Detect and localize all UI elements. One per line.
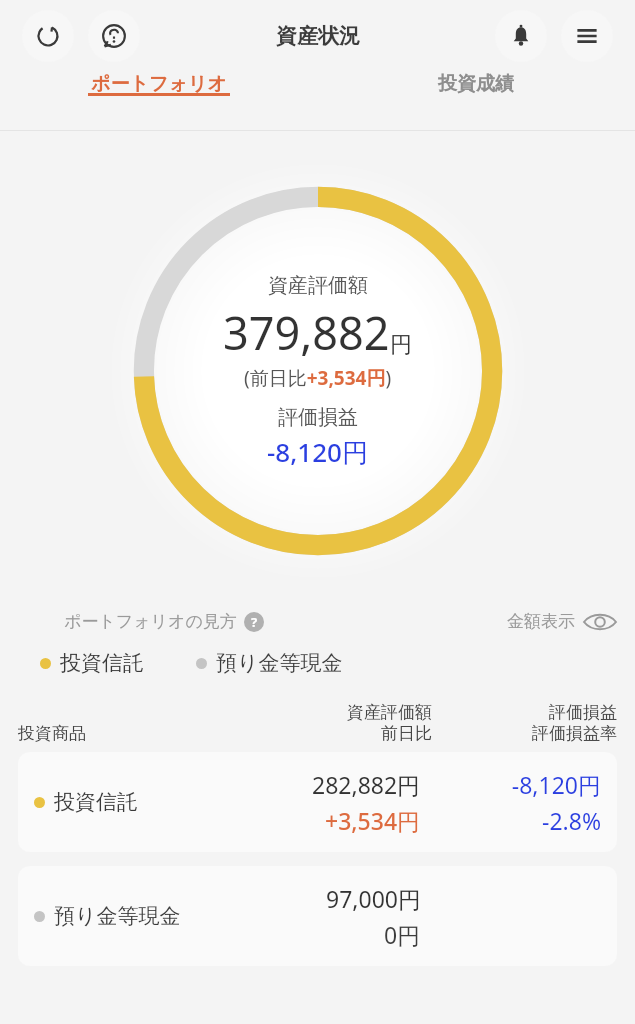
button[interactable]: Menu [561,10,613,62]
staticText: 投資成績 [438,72,514,96]
staticText: 投資信託 [54,789,138,815]
button[interactable]: Help [88,10,140,62]
staticText: 円 [390,331,412,359]
staticText: 預り金等現金 [216,650,343,676]
staticText: ? [251,613,258,631]
staticText: 282,882円 [312,769,421,800]
button[interactable]: Notifications [495,10,547,62]
staticText: -8,120円 [267,434,368,470]
staticText: 評価損益 [278,405,358,430]
staticText: 評価損益 [549,702,617,723]
staticText: 預り金等現金 [54,903,181,929]
staticText: -2.8% [542,805,601,836]
button[interactable]: 投資成績 [317,72,635,96]
staticText: -8,120円 [511,769,601,800]
staticText: ポートフォリオ [91,72,227,96]
staticText: ポートフォリオの見方 [64,611,237,632]
staticText: 金額表示 [507,611,575,632]
staticText: 97,000円 [326,883,421,914]
button[interactable]: ポートフォリオ [0,72,317,96]
staticText: 投資信託 [60,650,144,676]
staticText: 379,882 [223,302,390,363]
staticText: (前日比+3,534円) [244,365,392,391]
staticText: 投資商品 [18,723,272,744]
button[interactable]: 金額表示 [507,611,617,632]
staticText: 資産評価額 [268,273,368,298]
staticText: 前日比 [381,723,432,744]
button[interactable]: ポートフォリオの見方 [64,611,264,632]
staticText: 0円 [384,919,421,950]
staticText: 評価損益率 [532,723,617,744]
button[interactable]: Refresh [22,10,74,62]
staticText: 資産状況 [276,23,360,49]
button[interactable]: 投資信託 [18,752,617,852]
button[interactable]: 預り金等現金 [18,866,617,966]
staticText: 資産評価額 [347,702,432,723]
staticText: +3,534円 [325,805,421,836]
